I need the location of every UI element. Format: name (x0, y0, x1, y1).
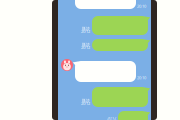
staticText: 20:12 (107, 115, 116, 120)
staticText: 既読 (82, 42, 90, 47)
staticText: 20:12 (81, 45, 90, 50)
staticText: 20:10 (137, 4, 146, 9)
staticText: 20:12 (81, 101, 90, 106)
staticText: 20:10 (137, 75, 146, 80)
staticText: 既読 (82, 98, 90, 103)
staticText: 既読 (82, 26, 90, 31)
staticText: 20:12 (81, 29, 90, 34)
